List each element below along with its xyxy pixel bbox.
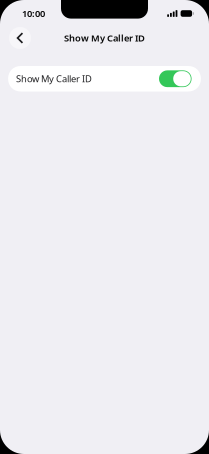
staticText: 10:00	[22, 7, 45, 20]
staticText: Show My Caller ID	[16, 73, 92, 85]
staticText: Show My Caller ID	[64, 32, 145, 44]
button[interactable]: Show My Caller ID	[8, 66, 201, 91]
button[interactable]: Back	[9, 27, 31, 49]
